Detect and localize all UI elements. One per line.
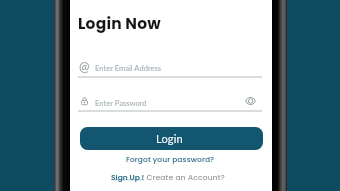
button[interactable]: Sign Up ! Create an Account? (111, 172, 225, 182)
button[interactable]: @ (78, 52, 262, 78)
staticText: Login (156, 132, 183, 145)
button[interactable]: Enter Password (78, 86, 262, 112)
staticText: @ (79, 59, 90, 74)
button[interactable]: Login (80, 127, 263, 150)
button[interactable] (245, 97, 256, 105)
staticText: Enter Password (95, 98, 147, 107)
staticText: Login Now (78, 13, 161, 35)
staticText: Enter Email Address (95, 63, 162, 72)
button[interactable]: Forgot your password? (126, 154, 215, 164)
staticText: Sign Up ! Create an Account? (111, 172, 225, 182)
staticText: Forgot your password? (126, 154, 215, 164)
